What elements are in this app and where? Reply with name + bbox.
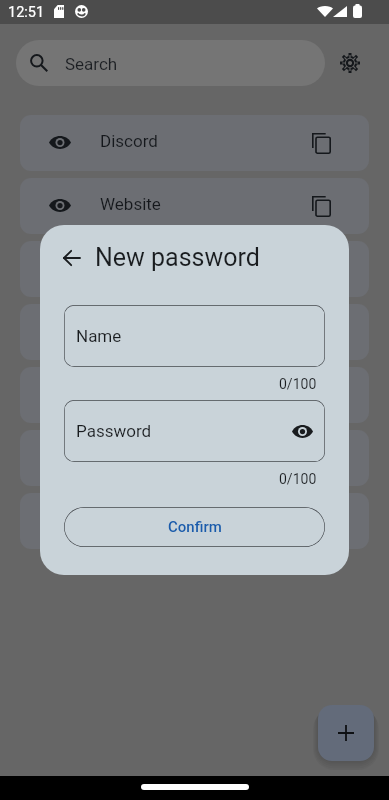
button[interactable]: Reddit [20,493,369,549]
button[interactable]: Copy password [301,312,341,352]
button[interactable]: Password [64,400,325,462]
staticText: Website [100,194,161,214]
staticText: 0/100 [279,376,317,392]
button[interactable]: Copy password [301,501,341,541]
button[interactable]: Name [64,305,325,367]
staticText: Discord [100,131,158,151]
button[interactable]: Settings [333,46,366,79]
button[interactable]: Discord [20,115,369,171]
button[interactable]: Bank [20,304,369,360]
staticText: Confirm [168,518,222,536]
button[interactable]: Copy password [301,123,341,163]
button[interactable]: Email [20,241,369,297]
staticText: Steam [100,446,149,466]
staticText: New password [95,243,260,272]
staticText: 0/100 [279,471,317,487]
staticText: Bank [100,320,138,340]
staticText: Email [100,257,143,277]
button[interactable]: Copy password [301,438,341,478]
button[interactable]: Search [16,40,325,86]
button[interactable]: Add password [318,705,374,761]
button[interactable]: Back [54,240,89,275]
button[interactable]: GitHub [20,367,369,423]
staticText: Password [76,421,152,441]
button[interactable]: Steam [20,430,369,486]
button[interactable]: Copy password [301,186,341,226]
staticText: Search [65,54,118,74]
button[interactable]: Website [20,178,369,234]
staticText: 12:51 [8,4,45,21]
button[interactable]: Copy password [301,375,341,415]
staticText: GitHub [100,383,153,403]
staticText: Name [76,326,122,346]
button[interactable]: Confirm [64,507,325,547]
